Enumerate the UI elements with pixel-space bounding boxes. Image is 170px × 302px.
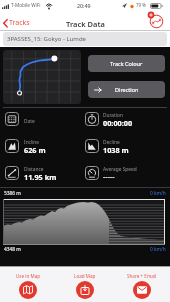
staticText: 79 % xyxy=(136,2,146,8)
staticText: 00:00:00 xyxy=(103,118,133,128)
staticText: 3PASSES_15: Gokyo - Lumde xyxy=(7,35,86,43)
staticText: Tracks xyxy=(9,18,30,28)
staticText: Use in Map xyxy=(16,273,41,279)
staticText: Incline xyxy=(24,139,40,146)
staticText: Average Speed xyxy=(103,166,137,173)
staticText: 20:49 xyxy=(77,2,91,9)
staticText: ----- xyxy=(103,171,115,181)
button[interactable]: 3PASSES_15: Gokyo - Lumde xyxy=(3,32,167,46)
staticText: Decline xyxy=(103,139,120,146)
staticText: 0 km/h xyxy=(150,190,166,197)
staticText: 11.95 km xyxy=(24,172,57,182)
button[interactable]: Tracks xyxy=(2,16,38,30)
staticText: 0 km/h xyxy=(150,246,166,253)
staticText: Load Map xyxy=(74,273,96,279)
staticText: 4348 m xyxy=(4,246,21,253)
staticText: T-Mobile WiFi xyxy=(11,2,41,8)
staticText: Share + Email xyxy=(127,273,157,279)
staticText: Direction xyxy=(115,86,139,93)
button[interactable]: Share + Email xyxy=(116,268,168,302)
staticText: Date xyxy=(24,118,35,125)
staticText: Track Colour xyxy=(110,60,143,67)
staticText: Track Data xyxy=(66,19,105,29)
staticText: Distance xyxy=(24,166,44,173)
button[interactable]: Use in Map xyxy=(2,268,54,302)
button[interactable] xyxy=(144,11,166,30)
button[interactable]: Direction xyxy=(88,81,165,98)
staticText: Duration xyxy=(103,112,123,119)
button[interactable]: Load Map xyxy=(59,268,111,302)
button[interactable]: Track Colour xyxy=(88,55,165,72)
staticText: 1038 m xyxy=(103,145,129,155)
staticText: 626 m xyxy=(24,145,46,155)
staticText: 5386 m xyxy=(4,190,21,197)
